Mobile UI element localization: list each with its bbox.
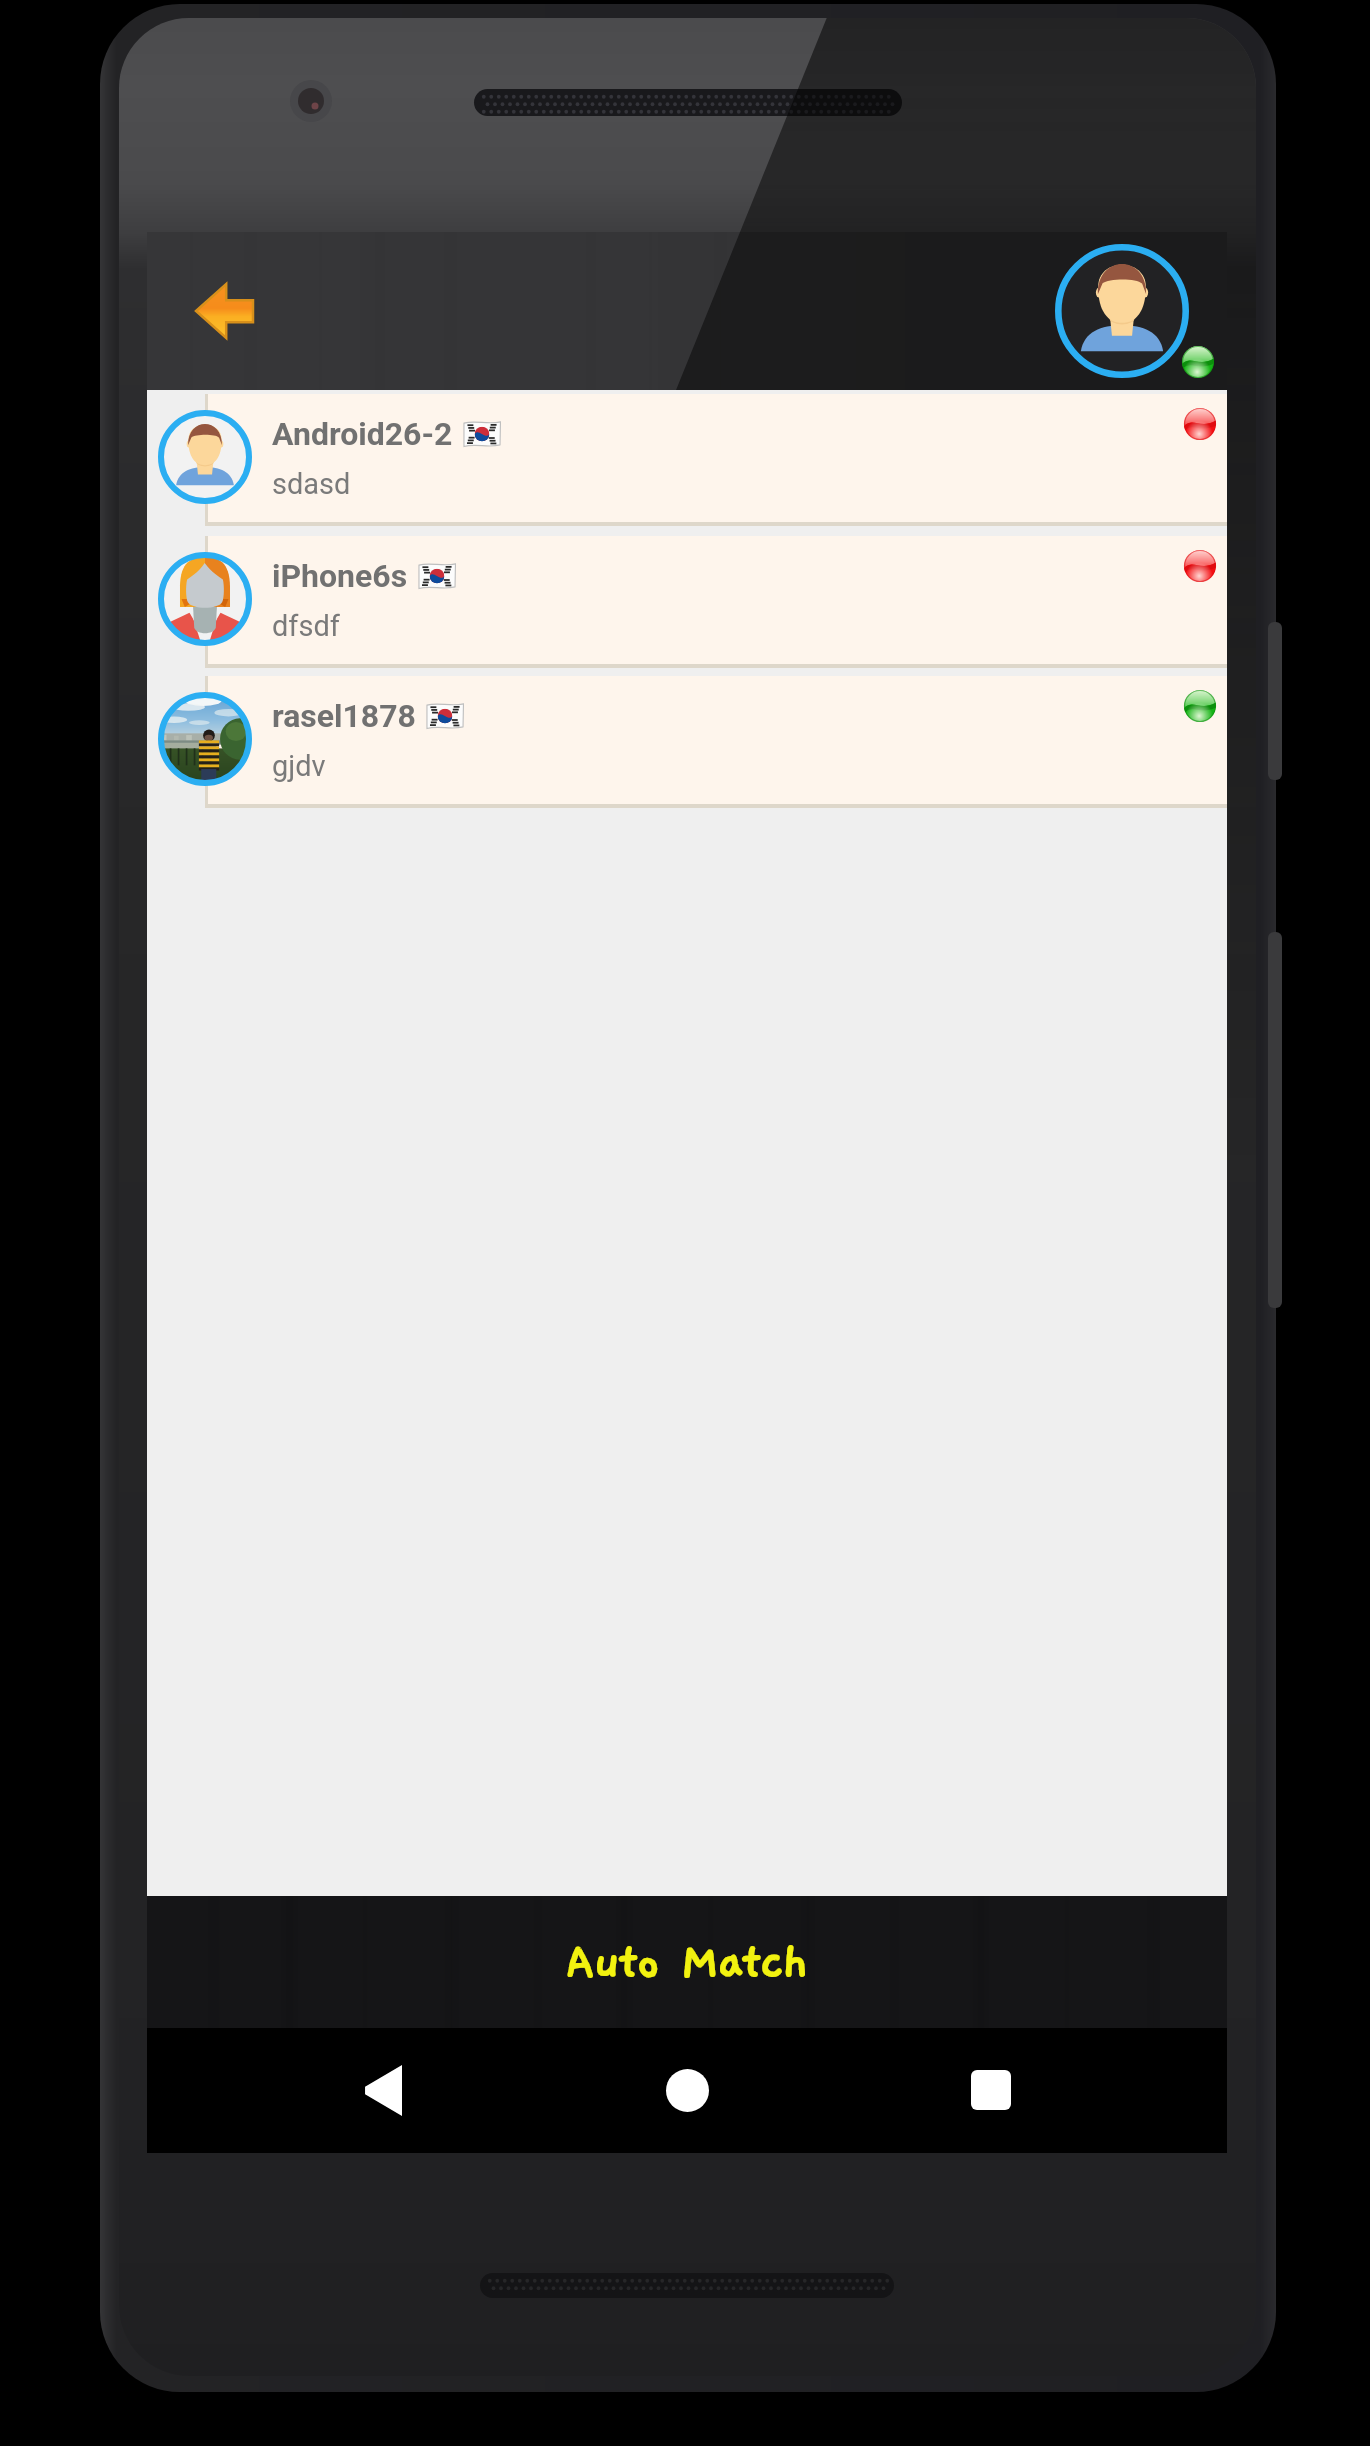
staticText: gjdv xyxy=(272,749,326,783)
staticText: Android26-2 xyxy=(272,415,453,453)
button[interactable]: Auto Match xyxy=(147,1896,1227,2028)
staticText: dfsdf xyxy=(272,609,340,643)
button[interactable]: Back xyxy=(343,2050,423,2130)
button[interactable]: My profile xyxy=(1055,244,1189,378)
button[interactable]: Home xyxy=(647,2050,727,2130)
button[interactable]: Back xyxy=(174,271,274,351)
button[interactable]: rasel1878 xyxy=(147,676,1227,808)
button[interactable]: iPhone6s xyxy=(147,536,1227,668)
staticText: Auto Match xyxy=(566,1936,808,1988)
staticText: rasel1878 xyxy=(272,697,416,735)
staticText: Auto Match xyxy=(566,1936,808,1988)
staticText: iPhone6s xyxy=(272,557,408,595)
button[interactable]: Android26-2 xyxy=(147,394,1227,526)
button[interactable]: Recent apps xyxy=(951,2050,1031,2130)
staticText: sdasd xyxy=(272,467,351,501)
